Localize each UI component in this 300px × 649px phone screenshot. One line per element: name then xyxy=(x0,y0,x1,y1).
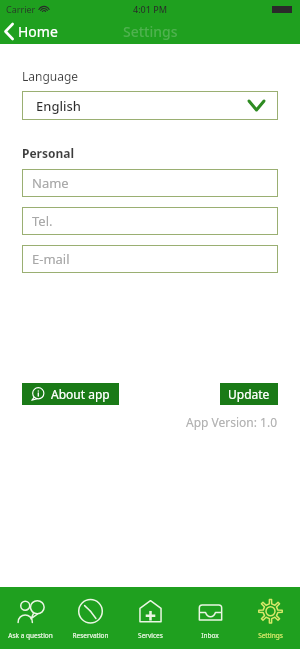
staticText: Reservation xyxy=(72,631,109,640)
button[interactable]: Update xyxy=(220,383,278,405)
button[interactable]: Name xyxy=(22,169,278,197)
staticText: Personal xyxy=(22,145,75,161)
button[interactable]: Reservation xyxy=(60,587,120,649)
staticText: Services xyxy=(138,631,163,640)
staticText: 4:01 PM xyxy=(133,3,167,15)
staticText: Name xyxy=(32,174,69,192)
button[interactable]: Services xyxy=(120,587,180,649)
staticText: E-mail xyxy=(32,250,70,268)
staticText: English xyxy=(36,97,81,115)
button[interactable]: Tel. xyxy=(22,207,278,235)
staticText: Home xyxy=(18,22,58,41)
button[interactable]: Ask a question xyxy=(0,587,60,649)
button[interactable]: Inbox xyxy=(180,587,240,649)
staticText: App Version: 1.0 xyxy=(186,414,278,430)
staticText: Language xyxy=(22,68,79,84)
staticText: Tel. xyxy=(32,212,53,230)
staticText: Ask a question xyxy=(8,631,53,640)
button[interactable]: English xyxy=(22,91,278,120)
staticText: Inbox xyxy=(201,631,219,640)
staticText: Settings xyxy=(258,631,283,640)
staticText: About app xyxy=(51,386,110,402)
staticText: Update xyxy=(228,386,270,402)
button[interactable]: Settings xyxy=(240,587,300,649)
button[interactable]: About app xyxy=(22,383,119,405)
staticText: Carrier xyxy=(6,3,36,15)
button[interactable]: Home xyxy=(0,22,68,41)
button[interactable]: E-mail xyxy=(22,245,278,273)
staticText: Settings xyxy=(123,22,178,41)
